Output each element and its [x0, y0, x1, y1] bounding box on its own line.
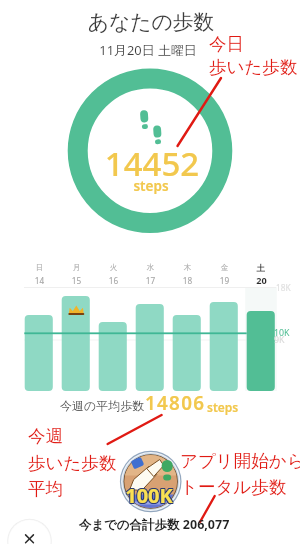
staticText: 100K: [0, 481, 300, 517]
staticText: 今週の平均歩数: [60, 398, 150, 420]
staticText: 20: [247, 274, 276, 291]
staticText: 15: [62, 275, 91, 290]
staticText: 100K: [0, 481, 298, 517]
staticText: あなたの歩数: [1, 9, 300, 46]
staticText: 10K: [274, 327, 300, 343]
staticText: 18: [173, 275, 202, 290]
staticText: 歩いた歩数: [28, 452, 123, 484]
staticText: 11月20日 土曜日: [0, 41, 298, 64]
staticText: 18K: [276, 282, 300, 297]
staticText: 水: [136, 263, 165, 277]
staticText: 平均: [28, 478, 88, 510]
staticText: 14: [25, 275, 54, 290]
staticText: 歩いた歩数: [209, 56, 300, 88]
staticText: 19: [210, 275, 239, 290]
staticText: 14806: [145, 390, 215, 424]
staticText: 100K: [0, 483, 299, 519]
staticText: 日: [25, 263, 54, 277]
staticText: 100K: [0, 483, 298, 519]
staticText: 100K: [0, 481, 299, 517]
staticText: 火: [99, 263, 128, 277]
staticText: steps: [207, 399, 247, 421]
staticText: 今週: [28, 425, 88, 457]
staticText: 今日: [209, 33, 269, 65]
staticText: 月: [62, 263, 91, 277]
staticText: トータル歩数: [180, 476, 295, 508]
staticText: 今までの合計歩数 206,077: [4, 516, 300, 539]
staticText: 木: [173, 263, 202, 277]
staticText: 14452: [2, 141, 300, 200]
staticText: 100K: [0, 482, 298, 518]
staticText: 16: [99, 275, 128, 290]
staticText: 17: [136, 275, 165, 290]
staticText: 金: [210, 263, 239, 277]
staticText: 100K: [0, 482, 300, 518]
staticText: アプリ開始から: [180, 450, 300, 482]
button[interactable]: Close: [8, 518, 52, 544]
staticText: 9K: [274, 334, 300, 350]
staticText: 100K: [0, 483, 300, 519]
staticText: 100K: [0, 482, 299, 518]
staticText: steps: [1, 177, 300, 201]
staticText: 土: [246, 263, 275, 278]
